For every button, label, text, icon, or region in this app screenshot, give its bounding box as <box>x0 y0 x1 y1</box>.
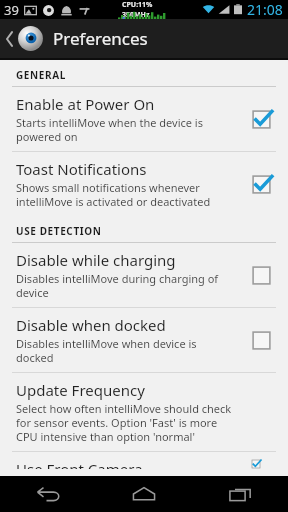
staticText: Disable while charging <box>16 250 176 270</box>
staticText: CPU:11% <box>122 0 153 10</box>
button[interactable]: Back <box>0 476 96 512</box>
button[interactable]: Use Front Camera <box>0 452 288 476</box>
staticText: Select how often intelliMove should chec… <box>16 401 236 444</box>
staticText: GENERAL <box>16 68 66 82</box>
button[interactable]: Home <box>96 476 192 512</box>
button[interactable]: Toast Notifications <box>0 152 288 216</box>
staticText: 39 <box>4 1 19 19</box>
staticText: USE DETECTION <box>16 224 102 238</box>
button[interactable]: Disable when docked <box>244 323 278 357</box>
staticText: 350MHz <box>122 10 150 19</box>
button[interactable]: Navigate up <box>0 19 48 58</box>
staticText: Enable at Power On <box>16 94 155 114</box>
staticText: Toast Notifications <box>16 159 147 179</box>
staticText: Disable when docked <box>16 315 166 335</box>
staticText: Shows small notifications whenever intel… <box>16 180 236 209</box>
staticText: Update Frequency <box>16 380 145 400</box>
button[interactable]: Recent apps <box>192 476 288 512</box>
staticText: Disables intelliMove when device is dock… <box>16 336 236 365</box>
button[interactable]: Disable while charging <box>0 243 288 307</box>
button[interactable]: Update Frequency <box>0 373 288 451</box>
button[interactable]: Enable at Power On <box>244 102 278 136</box>
staticText: Preferences <box>53 27 148 50</box>
button[interactable]: Enable at Power On <box>0 87 288 151</box>
button[interactable]: Disable when docked <box>0 308 288 372</box>
staticText: Starts intelliMove when the device is po… <box>16 115 236 144</box>
button[interactable]: Disable while charging <box>244 258 278 292</box>
staticText: Disables intelliMove during charging of … <box>16 271 236 300</box>
button[interactable]: Use Front Camera <box>244 459 278 469</box>
staticText: 21:08 <box>247 0 283 19</box>
staticText: Use Front Camera <box>16 459 143 469</box>
button[interactable]: Toast Notifications <box>244 167 278 201</box>
